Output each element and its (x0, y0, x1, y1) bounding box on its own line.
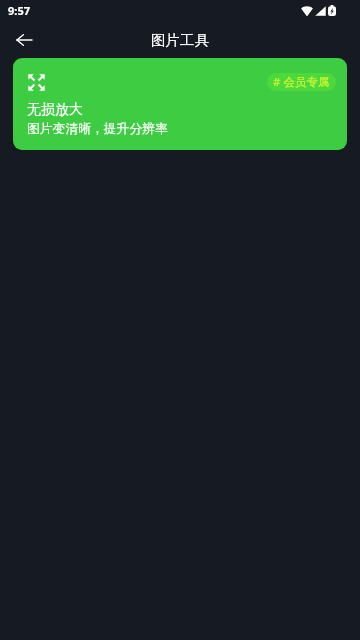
staticText: 图片工具 (151, 31, 209, 49)
staticText: 无损放大 (27, 101, 83, 119)
button[interactable]: # 会员专属 (13, 58, 347, 150)
staticText: 9:57 (8, 3, 30, 18)
staticText: 图片变清晰，提升分辨率 (27, 121, 168, 137)
staticText: # 会员专属 (273, 74, 330, 90)
button[interactable]: Back (8, 26, 40, 54)
